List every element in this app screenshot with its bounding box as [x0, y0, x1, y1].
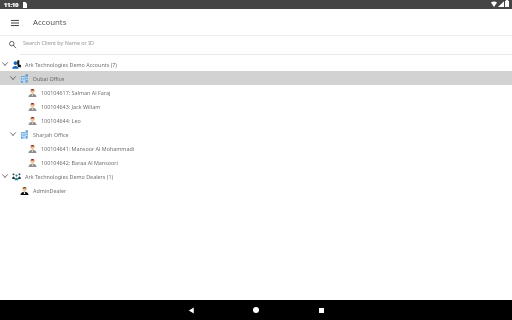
button[interactable]: Ark Technologies Demo Dealers (1) — [0, 169, 512, 183]
button[interactable]: Ark Technologies Demo Accounts (7) — [0, 57, 512, 71]
staticText: 100104641: Mansoor Al Mohammadi — [41, 145, 135, 152]
staticText: Ark Technologies Demo Dealers (1) — [25, 173, 114, 180]
button[interactable]: Open navigation drawer — [5, 13, 24, 32]
staticText: AdminDealer — [33, 187, 67, 194]
staticText: Ark Technologies Demo Accounts (7) — [25, 61, 117, 68]
button[interactable]: 100104644: Leo — [0, 113, 512, 127]
button[interactable]: 100104642: Baraa Al Mansoori — [0, 155, 512, 169]
button[interactable]: AdminDealer — [0, 183, 512, 197]
button[interactable]: Home — [236, 300, 276, 320]
staticText: 11:10 — [4, 1, 19, 9]
button[interactable]: 100104617: Salman Al Faraj — [0, 85, 512, 99]
button[interactable]: Recent apps — [301, 300, 341, 320]
button[interactable]: 100104643: Jack Willam — [0, 99, 512, 113]
button[interactable]: Search Client by Name or ID — [0, 36, 512, 56]
button[interactable]: Sharjah Office — [0, 127, 512, 141]
staticText: 100104642: Baraa Al Mansoori — [41, 159, 118, 166]
button[interactable]: Back — [171, 300, 211, 320]
staticText: Search Client by Name or ID — [23, 39, 94, 46]
staticText: Dubai Office — [33, 75, 65, 82]
button[interactable]: 100104641: Mansoor Al Mohammadi — [0, 141, 512, 155]
staticText: Sharjah Office — [33, 131, 69, 138]
staticText: 100104644: Leo — [41, 117, 81, 124]
staticText: 100104643: Jack Willam — [41, 103, 101, 110]
staticText: Accounts — [33, 17, 67, 28]
button[interactable]: Dubai Office — [0, 71, 512, 85]
staticText: 100104617: Salman Al Faraj — [41, 89, 111, 96]
